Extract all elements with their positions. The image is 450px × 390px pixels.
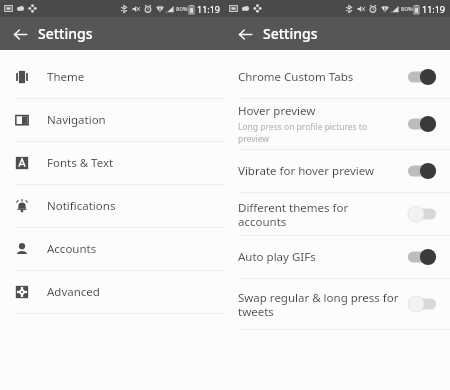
staticText: Vibrate for hover preview — [238, 163, 375, 179]
staticText: Notifications — [47, 198, 116, 214]
staticText: Navigation — [47, 112, 106, 128]
button[interactable]: Advanced — [0, 271, 225, 313]
button[interactable]: On — [407, 68, 437, 86]
staticText: Chrome Custom Tabs — [238, 69, 354, 85]
staticText: Hover preview — [238, 103, 316, 119]
staticText: Different themes for accounts — [238, 200, 399, 229]
button[interactable]: Notifications — [0, 185, 225, 227]
staticText: Theme — [47, 69, 85, 85]
button[interactable]: Theme — [0, 56, 225, 98]
button[interactable]: Navigation — [0, 99, 225, 141]
staticText: Swap regular & long press for tweets — [238, 290, 399, 319]
staticText: 80% — [176, 5, 188, 13]
staticText: Settings — [263, 24, 318, 43]
staticText: 80% — [401, 5, 413, 13]
button[interactable]: On — [407, 115, 437, 133]
button[interactable]: On — [407, 162, 437, 180]
staticText: Settings — [38, 24, 93, 43]
button[interactable]: Auto play GIFs — [225, 236, 450, 278]
staticText: Advanced — [47, 284, 100, 300]
button[interactable]: Chrome Custom Tabs — [225, 56, 450, 98]
button[interactable]: Different themes for accounts — [225, 193, 450, 235]
button[interactable]: Fonts & Text — [0, 142, 225, 184]
staticText: Long press on profile pictures to previe… — [238, 121, 399, 145]
button[interactable]: Off — [407, 205, 437, 223]
staticText: Accounts — [47, 241, 97, 257]
button[interactable]: On — [407, 248, 437, 266]
button[interactable]: Swap regular & long press for tweets — [225, 279, 450, 329]
button[interactable]: Vibrate for hover preview — [225, 150, 450, 192]
staticText: 11:19 — [422, 3, 446, 15]
button[interactable]: Back — [8, 22, 32, 46]
button[interactable]: Off — [407, 295, 437, 313]
staticText: 11:19 — [197, 3, 221, 15]
button[interactable]: Accounts — [0, 228, 225, 270]
staticText: Fonts & Text — [47, 155, 114, 171]
staticText: Auto play GIFs — [238, 249, 316, 265]
button[interactable]: Back — [233, 22, 257, 46]
button[interactable]: Hover preview — [225, 99, 450, 149]
